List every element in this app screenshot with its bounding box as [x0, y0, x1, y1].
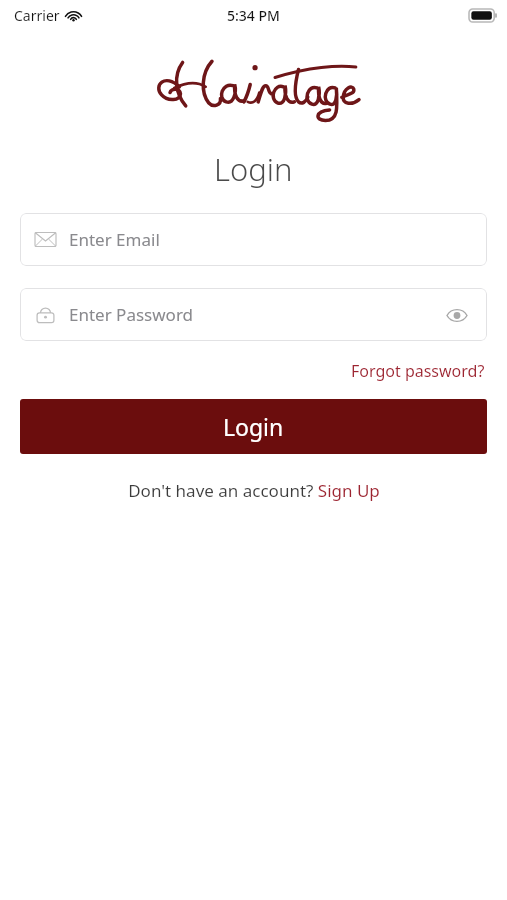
- staticText: Enter Password: [69, 303, 194, 326]
- staticText: Forgot password?: [351, 360, 485, 382]
- staticText: Enter Email: [69, 228, 160, 251]
- staticText: Login: [223, 411, 284, 442]
- button[interactable]: Enter Email: [20, 213, 487, 266]
- button[interactable]: Login: [20, 399, 487, 454]
- button[interactable]: Forgot password?: [349, 357, 487, 385]
- button[interactable]: Show password: [442, 300, 472, 330]
- staticText: 5:34 PM: [227, 6, 280, 25]
- staticText: Login: [214, 148, 293, 190]
- staticText: Carrier: [14, 6, 60, 25]
- staticText: Don't have an account? Sign Up: [128, 479, 380, 502]
- button[interactable]: Enter Password: [20, 288, 487, 341]
- button[interactable]: Don't have an account? Sign Up: [122, 476, 386, 505]
